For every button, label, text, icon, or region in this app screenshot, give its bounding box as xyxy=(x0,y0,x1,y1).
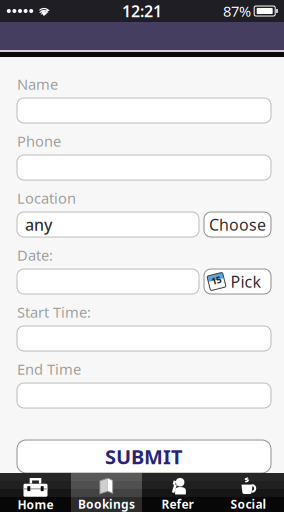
staticText: Refer xyxy=(161,496,193,512)
staticText: Location xyxy=(17,188,76,208)
button[interactable]: Refer xyxy=(142,473,213,512)
staticText: Name xyxy=(17,74,58,94)
button[interactable]: Bookings xyxy=(71,473,142,512)
button[interactable]: Social xyxy=(213,473,284,512)
staticText: any xyxy=(25,214,52,235)
staticText: 15 xyxy=(211,274,221,286)
staticText: End Time xyxy=(17,359,81,379)
staticText: Social xyxy=(230,496,266,512)
button[interactable]: 15 xyxy=(204,269,271,294)
staticText: Choose xyxy=(209,214,266,235)
staticText: Phone xyxy=(17,131,61,151)
staticText: Start Time: xyxy=(17,302,91,322)
staticText: 87% xyxy=(223,1,251,21)
staticText: Pick xyxy=(230,271,261,292)
staticText: Home xyxy=(17,496,53,512)
button[interactable]: SUBMIT xyxy=(17,440,271,473)
staticText: SUBMIT xyxy=(105,443,183,470)
button[interactable]: Choose xyxy=(204,212,271,237)
staticText: Bookings xyxy=(78,496,135,512)
staticText: Date: xyxy=(17,245,53,265)
staticText: 12:21 xyxy=(122,0,162,22)
button[interactable]: Home xyxy=(0,473,71,512)
